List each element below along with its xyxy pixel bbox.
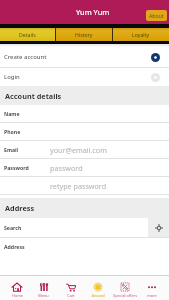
staticText: Around xyxy=(91,293,105,298)
staticText: Menu xyxy=(38,293,49,298)
staticText: Search xyxy=(4,224,22,231)
button[interactable]: Around xyxy=(84,276,111,300)
staticText: Address xyxy=(5,203,35,213)
button[interactable]: Menu xyxy=(30,276,57,300)
staticText: Login xyxy=(4,73,151,81)
button[interactable]: Cart xyxy=(57,276,84,300)
button[interactable]: Address xyxy=(0,238,169,255)
button[interactable]: Password xyxy=(0,159,169,176)
staticText: History xyxy=(75,31,93,38)
staticText: password xyxy=(50,163,83,173)
staticText: Phone xyxy=(4,128,50,135)
staticText: Email xyxy=(4,146,50,153)
button[interactable]: Home xyxy=(4,276,30,300)
button[interactable]: Phone xyxy=(0,123,169,140)
staticText: Password xyxy=(4,164,50,171)
staticText: Name xyxy=(4,110,50,117)
staticText: your@email.com xyxy=(50,145,107,155)
button[interactable]: Email xyxy=(0,141,169,158)
staticText: Details xyxy=(19,31,36,38)
button[interactable]: Create account xyxy=(0,47,169,67)
staticText: more xyxy=(147,293,157,298)
staticText: Address xyxy=(4,243,25,250)
staticText: About xyxy=(149,12,164,19)
staticText: Home xyxy=(12,293,23,298)
button[interactable]: Special offers xyxy=(111,276,138,300)
staticText: Create account xyxy=(4,53,151,61)
button[interactable]: Use my location xyxy=(148,218,169,237)
button[interactable]: Loyalty xyxy=(113,28,169,41)
button[interactable]: Details xyxy=(0,28,55,41)
button[interactable]: Search xyxy=(0,218,148,237)
button[interactable]: Name xyxy=(0,105,169,122)
staticText: Loyalty xyxy=(132,31,150,38)
button[interactable]: Login xyxy=(0,68,169,86)
button[interactable]: History xyxy=(56,28,112,41)
button[interactable]: more xyxy=(138,276,165,300)
button[interactable]: About xyxy=(146,10,167,21)
staticText: retype password xyxy=(50,181,107,191)
staticText: Account details xyxy=(5,91,62,101)
button[interactable]: retype password xyxy=(0,177,169,194)
staticText: Yum Yum xyxy=(76,7,110,17)
staticText: Cart xyxy=(67,293,75,298)
staticText: Special offers xyxy=(113,293,137,298)
